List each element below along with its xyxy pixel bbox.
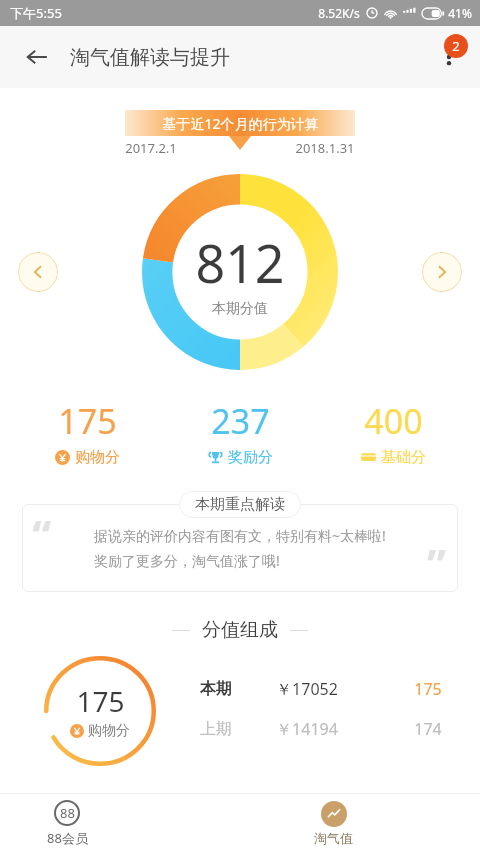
staticText: 812 bbox=[195, 227, 285, 298]
button[interactable]: Next period bbox=[422, 252, 462, 292]
staticText: 174 bbox=[414, 718, 442, 740]
staticText: 8.52K/s bbox=[318, 5, 360, 21]
staticText: 175 bbox=[414, 678, 442, 700]
button[interactable]: 400 bbox=[317, 396, 470, 469]
staticText: 88 bbox=[60, 804, 75, 822]
button[interactable]: 237 bbox=[164, 396, 317, 469]
staticText: ” bbox=[427, 535, 446, 592]
staticText: 上期 bbox=[200, 719, 232, 739]
button[interactable]: 淘气值 bbox=[267, 793, 400, 853]
staticText: 分值组成 bbox=[202, 618, 278, 642]
staticText: 奖励了更多分，淘气值涨了哦! bbox=[94, 551, 280, 570]
staticText: 2018.1.31 bbox=[295, 139, 355, 157]
button[interactable]: 175 bbox=[10, 396, 164, 469]
staticText: 购物分 bbox=[75, 448, 120, 467]
staticText: 400 bbox=[364, 398, 423, 444]
staticText: 下午5:55 bbox=[10, 4, 62, 22]
staticText: ￥17052 bbox=[276, 678, 338, 700]
staticText: 2017.2.1 bbox=[125, 139, 177, 157]
staticText: 淘气值 bbox=[314, 830, 353, 846]
staticText: 本期 bbox=[200, 679, 232, 699]
staticText: 175 bbox=[76, 682, 125, 720]
staticText: 淘气值解读与提升 bbox=[70, 45, 230, 70]
staticText: 41% bbox=[448, 5, 472, 21]
button[interactable]: 88 bbox=[0, 793, 134, 853]
staticText: 本期分值 bbox=[212, 300, 268, 318]
staticText: 237 bbox=[211, 398, 270, 444]
staticText: 奖励分 bbox=[228, 448, 273, 467]
staticText: 购物分 bbox=[88, 722, 130, 740]
staticText: 据说亲的评价内容有图有文，特别有料~太棒啦! bbox=[94, 526, 386, 545]
staticText: ￥14194 bbox=[276, 718, 338, 740]
button[interactable]: More options bbox=[426, 34, 472, 80]
button[interactable]: Back bbox=[16, 36, 58, 78]
staticText: 基础分 bbox=[381, 448, 426, 467]
staticText: 175 bbox=[58, 398, 117, 444]
staticText: 88会员 bbox=[47, 829, 88, 847]
staticText: 2 bbox=[452, 37, 460, 55]
button[interactable]: Previous period bbox=[18, 252, 58, 292]
staticText: 基于近12个月的行为计算 bbox=[162, 114, 319, 133]
staticText: 本期重点解读 bbox=[195, 495, 285, 514]
staticText: “ bbox=[32, 506, 51, 563]
